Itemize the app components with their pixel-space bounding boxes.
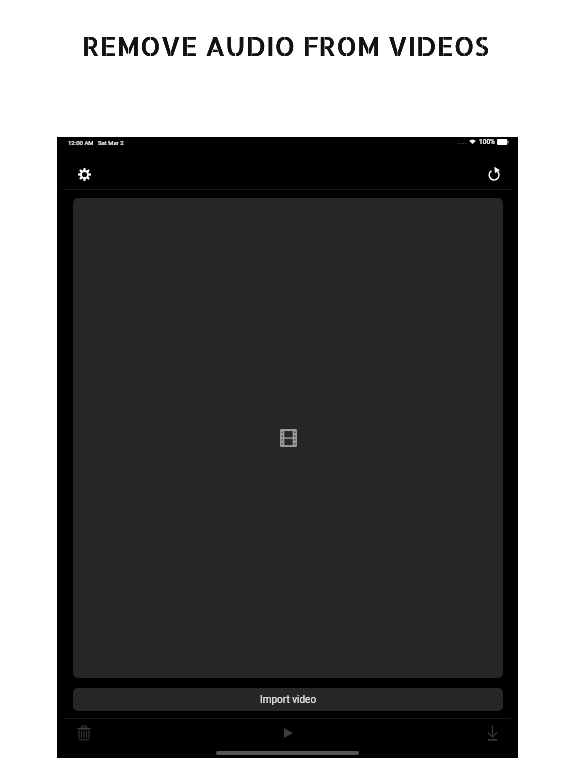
staticText: REMOVE AUDIO FROM VIDEOS <box>82 28 489 63</box>
button[interactable]: Play <box>272 719 304 747</box>
button[interactable]: Save <box>476 719 508 747</box>
staticText: REMOVE AUDIO FROM VIDEOS <box>82 28 489 63</box>
button[interactable]: Reset <box>481 161 507 187</box>
staticText: REMOVE AUDIO FROM VIDEOS <box>82 28 489 63</box>
staticText: Import video <box>260 694 317 706</box>
staticText: REMOVE AUDIO FROM VIDEOS <box>82 28 489 63</box>
button[interactable]: Settings <box>71 161 97 187</box>
button[interactable]: Delete <box>68 719 100 747</box>
staticText: 12:00 AM <box>68 139 94 146</box>
button[interactable]: Import video <box>73 688 503 711</box>
staticText: Sat Mar 2 <box>98 139 124 146</box>
staticText: 100% <box>479 138 495 146</box>
staticText: REMOVE AUDIO FROM VIDEOS <box>82 28 489 63</box>
